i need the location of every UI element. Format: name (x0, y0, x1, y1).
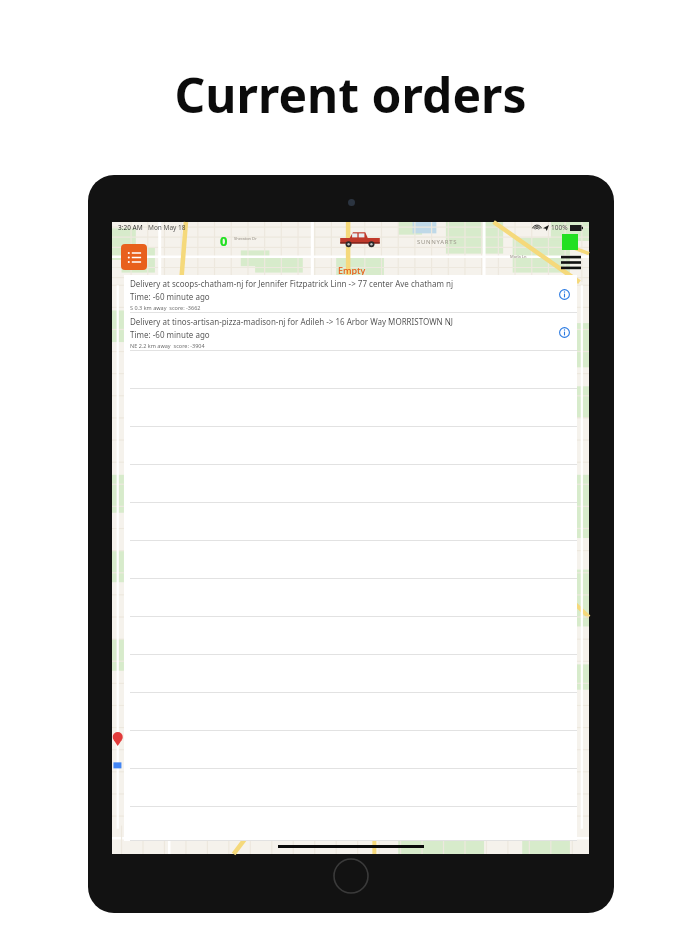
staticText: Time: -60 minute ago (130, 329, 210, 340)
staticText: Current orders (174, 62, 527, 127)
button[interactable] (124, 351, 577, 389)
button[interactable] (124, 769, 577, 807)
staticText: Time: -60 minute ago (130, 291, 210, 302)
button[interactable] (124, 389, 577, 427)
staticText: S 0.3 km away score: -3662 (130, 304, 201, 311)
button[interactable]: Delivery at scoops-chatham-nj for Jennif… (124, 275, 577, 313)
staticText: Mon May 18 (148, 223, 186, 232)
button[interactable] (124, 617, 577, 655)
button[interactable]: Order list (121, 244, 147, 270)
button[interactable]: Order info (557, 325, 571, 339)
button[interactable]: Delivery at tinos-artisan-pizza-madison-… (124, 313, 577, 351)
button[interactable] (124, 693, 577, 731)
staticText: Sheraton Dr (234, 236, 257, 241)
button[interactable] (124, 465, 577, 503)
staticText: NE 2.2 km away score: -3904 (130, 342, 205, 349)
button[interactable] (124, 579, 577, 617)
button[interactable] (124, 731, 577, 769)
button[interactable] (124, 655, 577, 693)
staticText: Marla Ln (510, 254, 527, 259)
staticText: Delivery at scoops-chatham-nj for Jennif… (130, 278, 454, 289)
staticText: SUNNYARTS (417, 238, 458, 246)
button[interactable] (124, 503, 577, 541)
staticText: 100% (551, 223, 568, 232)
staticText: 0 (220, 232, 228, 250)
staticText: Empty (338, 264, 366, 276)
staticText: Delivery at tinos-artisan-pizza-madison-… (130, 316, 454, 327)
button[interactable]: Order info (557, 287, 571, 301)
button[interactable] (124, 541, 577, 579)
button[interactable] (124, 427, 577, 465)
button[interactable] (124, 807, 577, 841)
button[interactable]: Menu (560, 253, 582, 270)
staticText: 3:20 AM (118, 223, 143, 232)
